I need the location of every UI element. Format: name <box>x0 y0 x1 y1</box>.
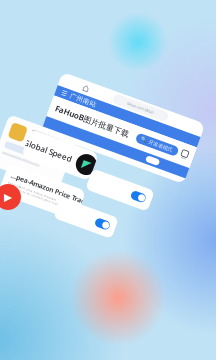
staticText: ▶ <box>4 191 12 203</box>
staticText: ⌂ <box>71 97 78 109</box>
staticText: FaHuoB图片批量下载 <box>53 127 131 137</box>
staticText: Global Speed <box>21 150 72 160</box>
staticText: 开发者模式 <box>152 129 177 135</box>
staticText: Keep track of price history, check and t… <box>7 193 67 200</box>
staticText: ◤ <box>84 149 92 161</box>
staticText: ☰ <box>53 112 59 119</box>
staticText: 🔍 <box>143 129 150 135</box>
staticText: 广州南站 <box>62 111 90 120</box>
staticText: ...pea-Amazon Price Tracker <box>7 182 96 191</box>
staticText: fahuo.com/detail <box>118 100 146 106</box>
